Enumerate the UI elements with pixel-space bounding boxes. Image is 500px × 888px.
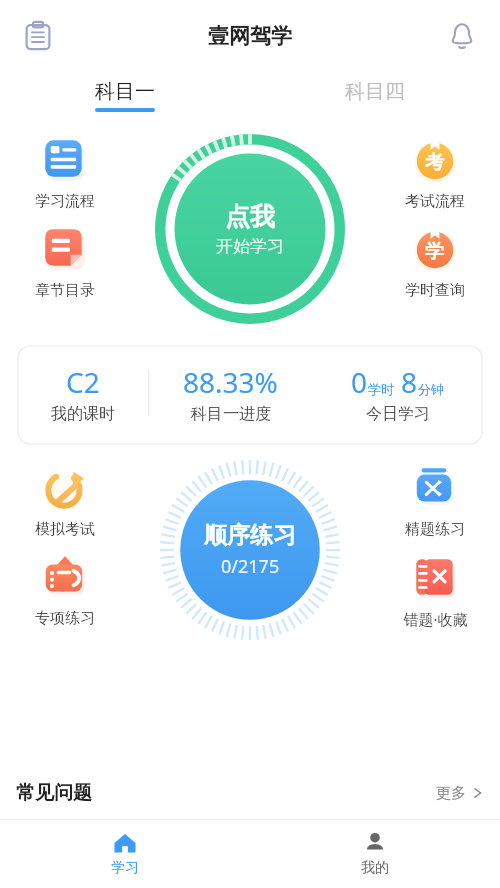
button[interactable]: 模拟考试: [5, 456, 125, 539]
staticText: 学时查询: [405, 281, 465, 300]
staticText: 我的课时: [51, 404, 115, 424]
staticText: 壹网驾学: [208, 23, 292, 49]
button[interactable]: 考: [375, 128, 495, 211]
staticText: 8: [401, 363, 418, 401]
staticText: 学习: [111, 859, 139, 877]
staticText: 学: [425, 239, 445, 263]
staticText: 考试流程: [405, 192, 465, 211]
button[interactable]: C2: [18, 344, 482, 442]
button[interactable]: 学习: [0, 820, 250, 888]
button[interactable]: 顺序练习: [160, 460, 340, 640]
staticText: 学习流程: [35, 192, 95, 211]
staticText: 模拟考试: [35, 520, 95, 539]
button[interactable]: 科目一: [0, 72, 250, 118]
staticText: 我的: [361, 859, 389, 877]
button[interactable]: 专项练习: [5, 545, 125, 628]
button[interactable]: 科目四: [250, 72, 500, 118]
staticText: 精题练习: [405, 520, 465, 539]
button[interactable]: 章节目录: [5, 217, 125, 300]
staticText: 0/2175: [221, 554, 280, 579]
button[interactable]: 学习流程: [5, 128, 125, 211]
staticText: 点我: [225, 201, 275, 232]
button[interactable]: 错题·收藏: [375, 545, 495, 629]
button[interactable]: 精题练习: [375, 456, 495, 539]
staticText: 考: [425, 150, 445, 174]
staticText: 章节目录: [35, 281, 95, 300]
button[interactable]: 我的: [250, 820, 500, 888]
button[interactable]: 常见问题: [0, 767, 500, 819]
button[interactable]: 点我: [155, 134, 345, 324]
staticText: 学时: [368, 381, 394, 397]
staticText: 科目一进度: [191, 404, 271, 424]
staticText: 专项练习: [35, 609, 95, 628]
staticText: 顺序练习: [204, 521, 296, 550]
staticText: 0: [351, 363, 368, 401]
button[interactable]: 学: [375, 217, 495, 300]
staticText: 88.33%: [183, 363, 278, 401]
staticText: 分钟: [418, 381, 444, 397]
button[interactable]: Records: [14, 12, 62, 60]
staticText: 今日学习: [366, 404, 430, 424]
staticText: 科目一: [95, 79, 155, 104]
staticText: 开始学习: [216, 236, 284, 257]
staticText: 更多: [436, 784, 466, 803]
staticText: 错题·收藏: [403, 609, 468, 629]
staticText: C2: [66, 363, 100, 401]
button[interactable]: Notifications: [438, 12, 486, 60]
staticText: 常见问题: [16, 781, 92, 805]
staticText: 科目四: [345, 79, 405, 104]
